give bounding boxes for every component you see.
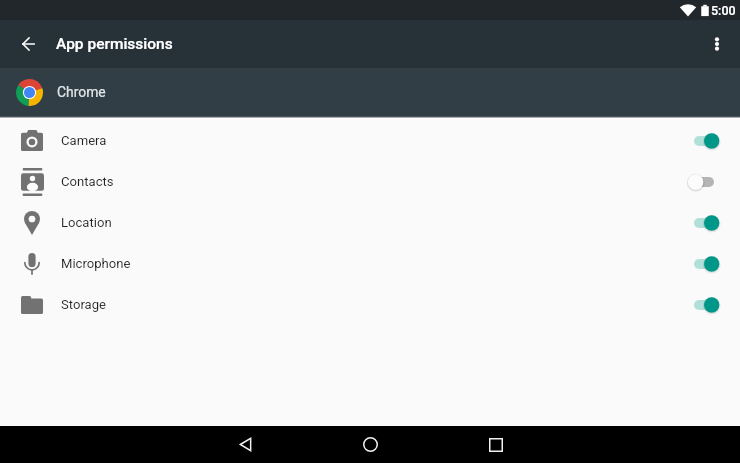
staticText: Microphone [61, 256, 131, 271]
button[interactable]: Storage [0, 284, 740, 325]
button[interactable] [687, 129, 721, 153]
button[interactable]: More options [699, 26, 735, 62]
button[interactable]: Back [10, 26, 46, 62]
button[interactable] [687, 293, 721, 317]
button[interactable]: Contacts [0, 161, 740, 202]
staticText: Chrome [57, 84, 106, 100]
staticText: Storage [61, 297, 106, 312]
button[interactable] [687, 211, 721, 235]
button[interactable]: Location [0, 202, 740, 243]
button[interactable]: Camera [0, 120, 740, 161]
button[interactable] [687, 170, 721, 194]
staticText: 5:00 [711, 3, 736, 18]
button[interactable]: Back [140, 426, 351, 463]
staticText: Location [61, 215, 112, 230]
button[interactable]: Microphone [0, 243, 740, 284]
button[interactable]: Home [351, 426, 390, 463]
button[interactable] [687, 252, 721, 276]
button[interactable]: Recent apps [390, 426, 601, 463]
staticText: Contacts [61, 174, 114, 189]
staticText: App permissions [56, 35, 173, 53]
staticText: Camera [61, 133, 107, 148]
button[interactable]: Chrome [0, 68, 740, 116]
